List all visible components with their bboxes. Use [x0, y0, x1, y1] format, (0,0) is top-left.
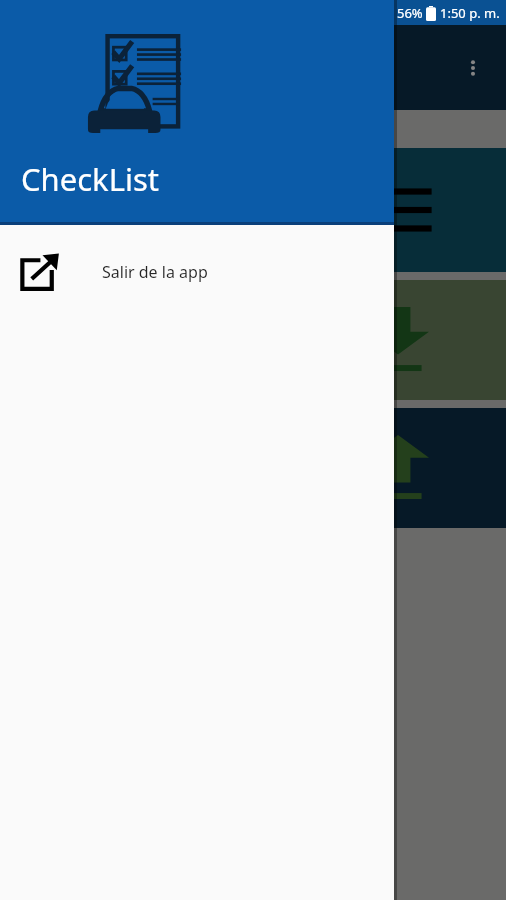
button[interactable]	[290, 148, 506, 272]
button[interactable]: Salir de la app	[0, 225, 394, 319]
staticText: CheckList	[21, 158, 159, 200]
staticText: 56%	[397, 4, 423, 22]
button[interactable]	[290, 280, 506, 400]
staticText: Salir de la app	[102, 261, 208, 283]
button[interactable]: More options	[452, 47, 494, 89]
staticText: 1:50 p. m.	[440, 4, 500, 22]
button[interactable]	[290, 408, 506, 528]
